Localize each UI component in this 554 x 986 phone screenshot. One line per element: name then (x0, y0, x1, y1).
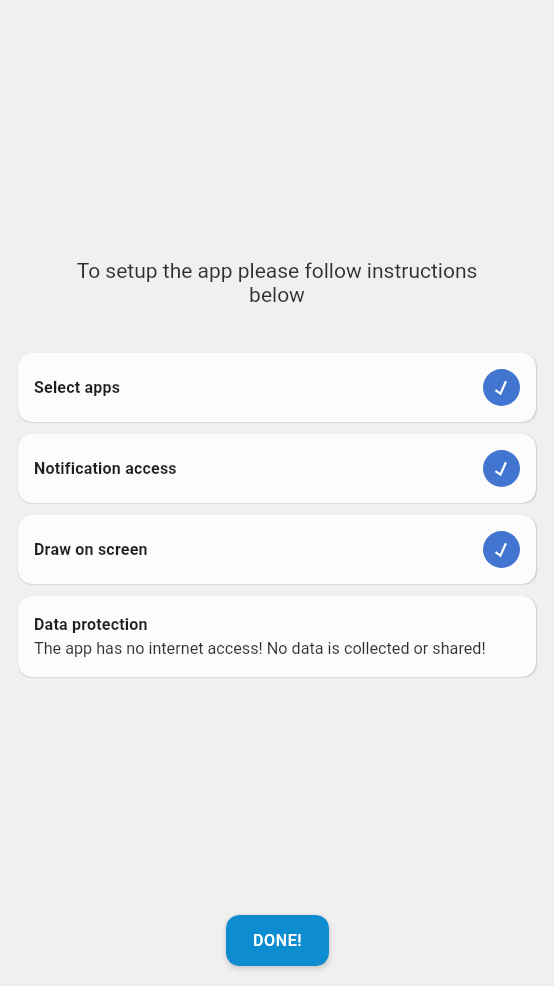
button[interactable]: Step completed (483, 450, 520, 487)
button[interactable]: Data protection (18, 596, 536, 677)
button[interactable]: DONE! (226, 915, 329, 966)
staticText: Select apps (34, 378, 121, 397)
staticText: DONE! (253, 931, 303, 950)
staticText: Data protection (34, 615, 148, 634)
button[interactable]: Step completed (483, 531, 520, 568)
button[interactable]: Step completed (483, 369, 520, 406)
staticText: To setup the app please follow instructi… (18, 259, 536, 307)
staticText: Notification access (34, 459, 177, 478)
button[interactable]: Draw on screen (18, 515, 536, 584)
staticText: The app has no internet access! No data … (34, 639, 486, 658)
button[interactable]: Select apps (18, 353, 536, 422)
staticText: Draw on screen (34, 540, 148, 559)
button[interactable]: Notification access (18, 434, 536, 503)
